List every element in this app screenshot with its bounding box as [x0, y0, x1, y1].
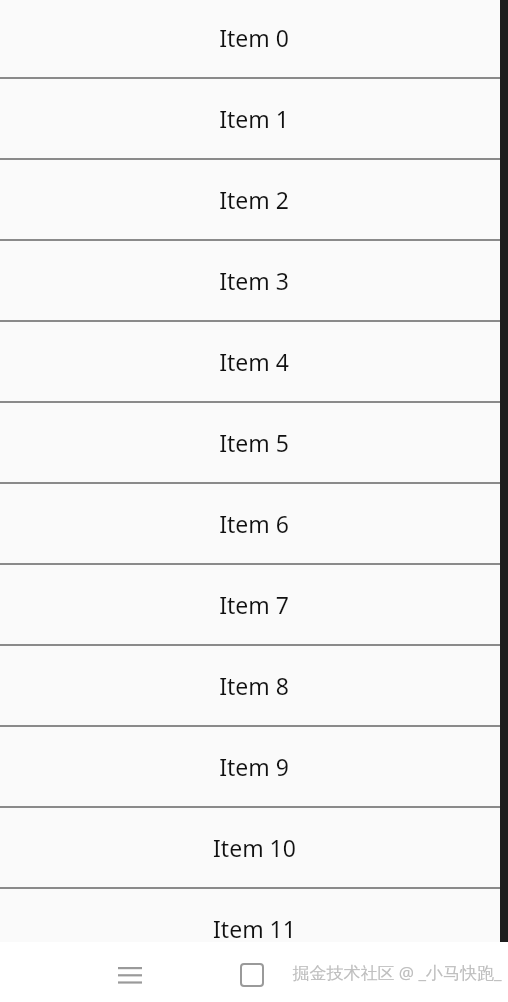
button[interactable]: Item 0: [0, 0, 508, 77]
staticText: Item 3: [219, 265, 289, 296]
button[interactable]: Item 7: [0, 565, 508, 644]
button[interactable]: Item 11: [0, 889, 508, 968]
staticText: Item 6: [219, 508, 289, 539]
staticText: Item 11: [213, 913, 296, 944]
button[interactable]: Item 3: [0, 241, 508, 320]
button[interactable]: Item 5: [0, 403, 508, 482]
button[interactable]: Home: [232, 955, 272, 995]
button[interactable]: Item 6: [0, 484, 508, 563]
staticText: Item 10: [213, 832, 296, 863]
button[interactable]: Item 2: [0, 160, 508, 239]
staticText: Item 4: [219, 346, 289, 377]
button[interactable]: Item 4: [0, 322, 508, 401]
button[interactable]: Item 9: [0, 727, 508, 806]
staticText: Item 8: [219, 670, 289, 701]
staticText: 掘金技术社区 @ _小马快跑_: [292, 961, 502, 984]
staticText: Item 9: [219, 751, 289, 782]
staticText: Item 1: [219, 103, 289, 134]
staticText: Item 0: [219, 22, 289, 53]
staticText: Item 7: [219, 589, 289, 620]
button[interactable]: Item 1: [0, 79, 508, 158]
staticText: Item 2: [219, 184, 289, 215]
button[interactable]: Item 8: [0, 646, 508, 725]
button[interactable]: Menu: [110, 955, 150, 995]
staticText: Item 5: [219, 427, 289, 458]
button[interactable]: Item 10: [0, 808, 508, 887]
